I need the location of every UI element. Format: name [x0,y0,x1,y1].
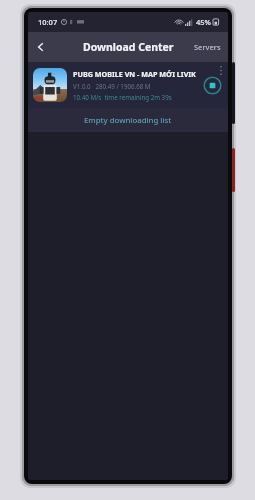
staticText: PUBG MOBILE VN - MAP MỚI LIVIK [73,69,196,79]
staticText: V1.0.0 280.49 / 1906.68 M [73,82,151,90]
button[interactable]: Pause download [203,76,222,95]
button[interactable]: Back [28,34,54,60]
button[interactable]: Empty downloading list [28,108,228,132]
staticText: Download Center [83,40,174,54]
button[interactable]: Servers [187,36,228,58]
staticText: Empty downloading list [84,115,172,126]
staticText: Servers [194,42,221,52]
button[interactable]: More options [214,62,228,78]
staticText: 45% [196,17,211,27]
staticText: 10.40 M/s time remaining 2m 39s [73,93,172,101]
staticText: 10:07 [38,17,58,27]
button[interactable]: PUBG MOBILE VN - MAP MỚI LIVIK [28,62,228,108]
